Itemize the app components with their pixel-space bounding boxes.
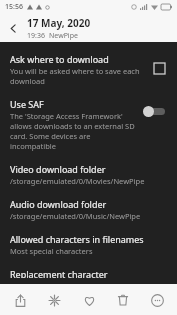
staticText: NewPipe xyxy=(49,31,78,41)
staticText: You will be asked where to save each dow… xyxy=(10,66,143,86)
staticText: Allowed characters in filenames xyxy=(10,233,144,245)
button[interactable]: Allowed characters in filenames xyxy=(0,227,177,262)
staticText: 19:36 xyxy=(27,31,45,41)
staticText: Audio download folder xyxy=(10,198,107,210)
button[interactable]: Ask where to download xyxy=(0,47,177,92)
staticText: 17 May, 2020 xyxy=(27,16,91,30)
staticText: Use SAF xyxy=(10,98,44,110)
button[interactable]: More xyxy=(143,286,171,314)
button[interactable]: Video download folder xyxy=(0,157,177,192)
button[interactable]: Effects xyxy=(40,286,68,314)
staticText: Ask where to download xyxy=(10,53,109,65)
button[interactable]: Replacement character xyxy=(0,262,177,284)
button[interactable]: Use SAF xyxy=(0,92,177,157)
staticText: /storage/emulated/0/Movies/NewPipe xyxy=(10,176,145,186)
staticText: Video download folder xyxy=(10,163,106,175)
staticText: /storage/emulated/0/Music/NewPipe xyxy=(10,211,141,221)
button[interactable]: Use SAF toggle xyxy=(143,103,169,119)
button[interactable]: Back xyxy=(5,20,21,36)
staticText: Replacement character xyxy=(10,268,108,278)
button[interactable]: Ask where to download checkbox xyxy=(149,58,169,78)
button[interactable]: Audio download folder xyxy=(0,192,177,227)
staticText: 15:56 xyxy=(5,2,23,12)
staticText: The 'Storage Access Framework' allows do… xyxy=(10,111,137,151)
button[interactable]: Share xyxy=(6,286,34,314)
button[interactable]: Favorite xyxy=(75,286,103,314)
button[interactable]: Delete xyxy=(109,286,137,314)
staticText: Most special characters xyxy=(10,246,93,256)
